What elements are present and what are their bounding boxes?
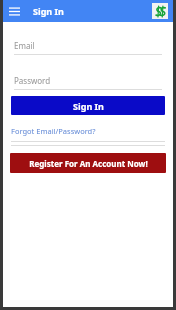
button[interactable]: Email [14, 38, 162, 52]
staticText: Email [14, 40, 35, 51]
staticText: Register For An Account Now! [29, 158, 148, 169]
staticText: Sign In [33, 5, 64, 17]
button[interactable]: Open navigation menu [3, 0, 25, 22]
button[interactable]: Forgot Email/Password? [11, 126, 96, 136]
staticText: Forgot Email/Password? [11, 126, 96, 136]
staticText: Password [14, 75, 51, 86]
button[interactable]: Password [14, 73, 162, 87]
staticText: Sign In [73, 100, 104, 112]
button[interactable]: Register For An Account Now! [10, 153, 166, 173]
button[interactable]: Sign In [11, 96, 165, 115]
button[interactable]: App logo [152, 3, 168, 19]
